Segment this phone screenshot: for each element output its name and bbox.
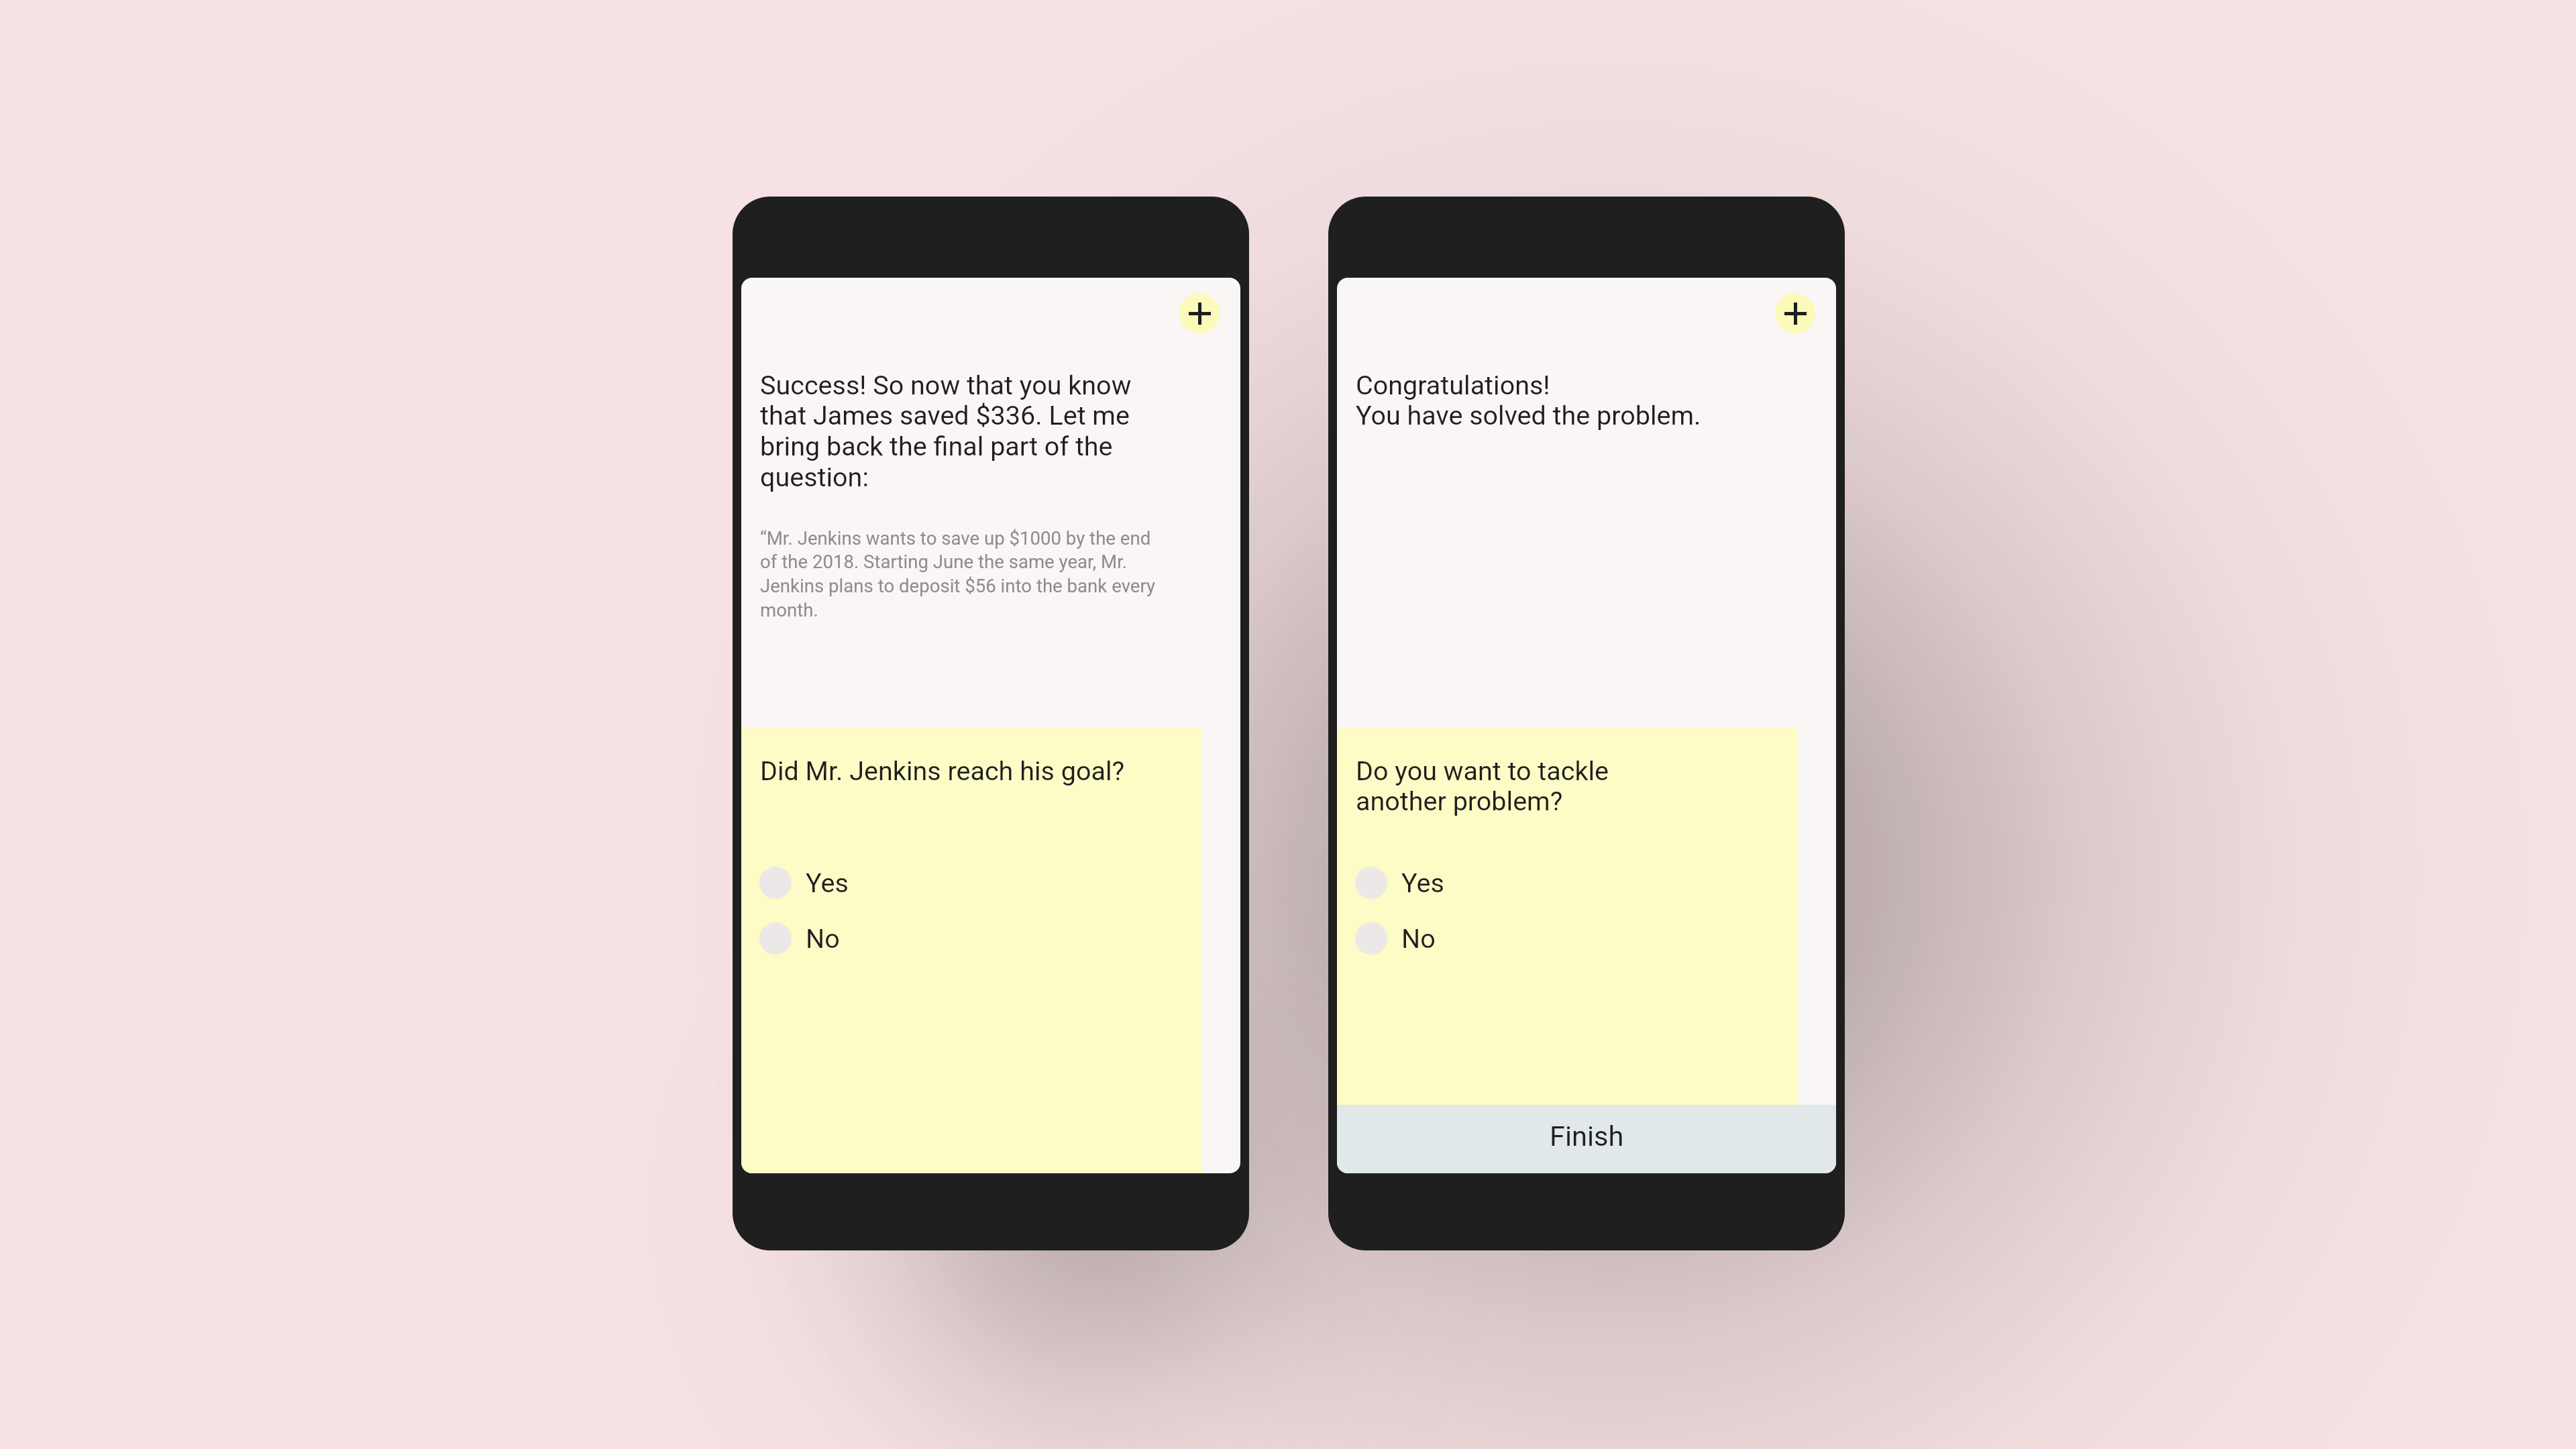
staticText: Finish	[1550, 1120, 1624, 1152]
button[interactable]: Add	[1179, 293, 1220, 333]
staticText: Yes	[1401, 867, 1444, 898]
button[interactable]: Yes	[1346, 857, 1776, 909]
button[interactable]: Finish	[1337, 1105, 1836, 1173]
staticText: Do you want to tackle another problem?	[1356, 755, 1609, 817]
staticText: “Mr. Jenkins wants to save up $1000 by t…	[760, 527, 1157, 621]
button[interactable]: No	[751, 912, 1180, 965]
button[interactable]: No	[1346, 912, 1776, 965]
button[interactable]: Add	[1775, 293, 1815, 333]
button[interactable]: Yes	[751, 857, 1180, 909]
staticText: Success! So now that you know that James…	[760, 370, 1156, 493]
staticText: No	[806, 923, 840, 954]
staticText: No	[1401, 923, 1436, 954]
staticText: Congratulations! You have solved the pro…	[1356, 370, 1701, 431]
staticText: Yes	[806, 867, 849, 898]
staticText: Did Mr. Jenkins reach his goal?	[760, 755, 1125, 786]
